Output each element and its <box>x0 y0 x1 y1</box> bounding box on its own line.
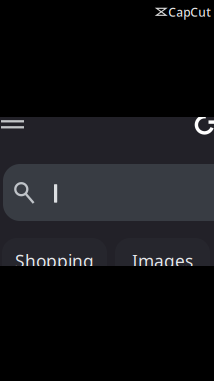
button[interactable]: Images <box>115 238 210 284</box>
button[interactable]: Menu <box>0 117 26 133</box>
staticText: Images <box>132 249 193 272</box>
staticText: Shopping <box>15 249 94 272</box>
staticText: CapCut <box>168 4 211 20</box>
button[interactable]: Shopping <box>2 238 107 284</box>
